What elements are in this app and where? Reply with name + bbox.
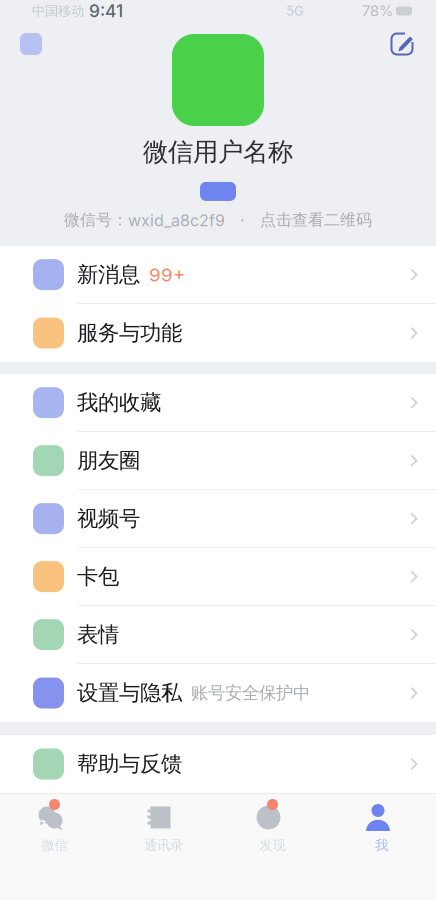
button[interactable]: 表情 [0, 606, 436, 664]
staticText: 新消息 [77, 261, 140, 288]
staticText: 微信号：wxid_a8c2f9 · 点击查看二维码 [64, 210, 372, 230]
staticText: 账号安全保护中 [191, 682, 310, 704]
staticText: 我 [375, 837, 388, 854]
button[interactable]: 我 [327, 793, 436, 900]
staticText: 卡包 [77, 563, 119, 590]
staticText: 表情 [77, 621, 119, 648]
button[interactable]: 我的收藏 [0, 374, 436, 432]
staticText: 9:41 [89, 0, 123, 21]
staticText: 发现 [259, 837, 285, 854]
staticText: 5G [286, 3, 304, 19]
button[interactable]: 帮助与反馈 [0, 735, 436, 793]
staticText: 设置与隐私 [77, 680, 182, 706]
button[interactable]: Compose [384, 26, 420, 62]
button[interactable]: 卡包 [0, 548, 436, 606]
staticText: 78% [362, 2, 393, 20]
staticText: 99+ [149, 263, 185, 286]
staticText: 中国移动 [32, 3, 84, 19]
staticText: 视频号 [77, 505, 140, 532]
staticText: 通讯录 [144, 837, 183, 854]
staticText: 我的收藏 [77, 389, 161, 416]
staticText: 微信 [41, 837, 67, 854]
button[interactable]: 设置与隐私 [0, 664, 436, 722]
staticText: 帮助与反馈 [77, 751, 182, 777]
button[interactable]: 服务与功能 [0, 304, 436, 362]
button[interactable]: 朋友圈 [0, 432, 436, 490]
button[interactable]: 新消息 [0, 246, 436, 304]
button[interactable]: 通讯录 [109, 793, 218, 900]
staticText: 微信用户名称 [143, 136, 293, 168]
staticText: 服务与功能 [77, 320, 182, 346]
button[interactable]: 视频号 [0, 490, 436, 548]
button[interactable]: Menu [13, 26, 49, 62]
staticText: 朋友圈 [77, 447, 140, 474]
button[interactable]: 发现 [218, 793, 327, 900]
button[interactable]: 微信 [0, 793, 109, 900]
